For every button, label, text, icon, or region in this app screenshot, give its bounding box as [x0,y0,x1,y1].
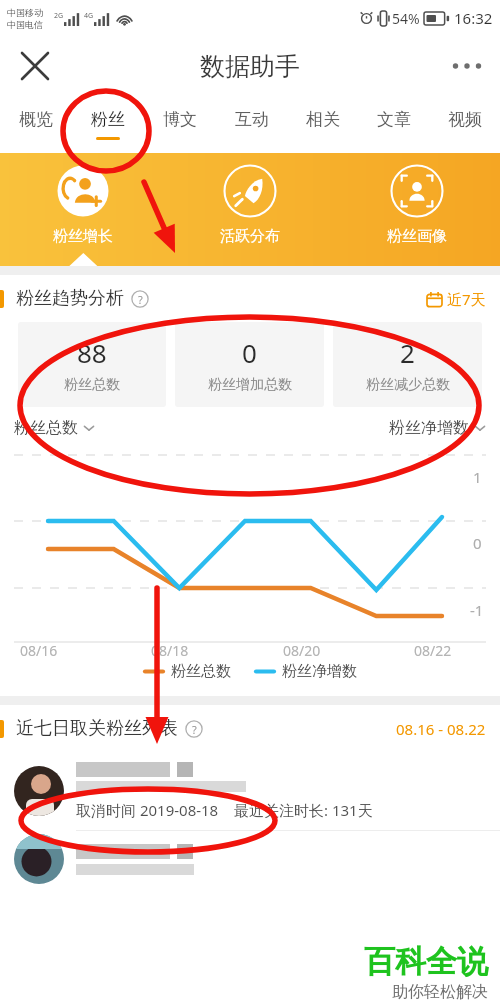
staticText: 16:32 [454,8,493,28]
staticText: 2 [400,335,415,370]
staticText: 中国电信 [7,19,43,30]
staticText: 中国移动 [7,7,43,18]
staticText: 近七日取关粉丝列表 [16,717,178,740]
staticText: 54% [392,9,420,28]
staticText: 粉丝 [91,109,125,130]
button[interactable]: 粉丝画像 [333,164,500,266]
staticText: ? [138,292,143,307]
staticText: 2G [54,11,64,21]
button[interactable]: 互动 [216,96,287,153]
button[interactable]: 粉丝总数 [14,418,95,438]
staticText: 08/22 [414,641,452,660]
button[interactable]: 相关 [287,96,358,153]
staticText: 近7天 [447,289,486,309]
button[interactable]: 文章 [358,96,429,153]
staticText: 粉丝净增数 [282,662,357,681]
staticText: 08/16 [20,641,58,660]
button[interactable] [14,831,486,887]
staticText: 粉丝增加总数 [208,376,292,394]
staticText: 08.16 - 08.22 [396,719,486,739]
staticText: -1 [470,600,484,620]
button[interactable]: Help [185,720,203,738]
button[interactable]: 2 [333,322,482,407]
staticText: 1 [473,467,482,487]
staticText: 粉丝趋势分析 [16,287,124,310]
staticText: 粉丝净增数 [389,418,469,438]
staticText: 数据助手 [200,51,300,82]
button[interactable]: 活跃分布 [166,164,333,266]
staticText: 4G [84,11,94,21]
staticText: 互动 [235,109,269,130]
staticText: 相关 [306,109,340,130]
staticText: 活跃分布 [220,227,280,246]
staticText: 粉丝减少总数 [366,376,450,394]
button[interactable]: 粉丝 [72,96,144,153]
staticText: 博文 [163,109,197,130]
staticText: 文章 [377,109,411,130]
staticText: 概览 [19,109,53,130]
staticText: 粉丝总数 [171,662,231,681]
button[interactable]: 取消时间 2019-08-18 [14,752,486,830]
button[interactable]: 粉丝增长 [0,164,166,266]
button[interactable]: Help [131,290,149,308]
button[interactable]: 0 [175,322,324,407]
staticText: ? [192,722,197,737]
staticText: 粉丝总数 [14,418,78,438]
staticText: 粉丝画像 [387,227,447,246]
staticText: 0 [242,335,257,370]
staticText: 0 [473,533,482,553]
staticText: 视频 [448,109,482,130]
button[interactable]: 概览 [0,96,72,153]
staticText: 粉丝增长 [53,227,113,246]
button[interactable]: 近7天 [427,289,486,309]
staticText: 08/20 [283,641,321,660]
staticText: 助你轻松解决 [392,982,488,1002]
staticText: 88 [77,335,107,370]
staticText: 最近关注时长: 131天 [234,800,373,820]
staticText: 取消时间 2019-08-18 [76,800,219,820]
staticText: 粉丝总数 [64,376,120,394]
staticText: 百科全说 [364,942,488,981]
button[interactable]: 88 [18,322,166,407]
button[interactable]: 博文 [144,96,216,153]
staticText: 08/18 [151,641,189,660]
button[interactable]: 粉丝净增数 [389,418,486,438]
button[interactable]: Close [12,43,58,89]
button[interactable]: More options [444,43,490,89]
button[interactable]: 视频 [429,96,500,153]
